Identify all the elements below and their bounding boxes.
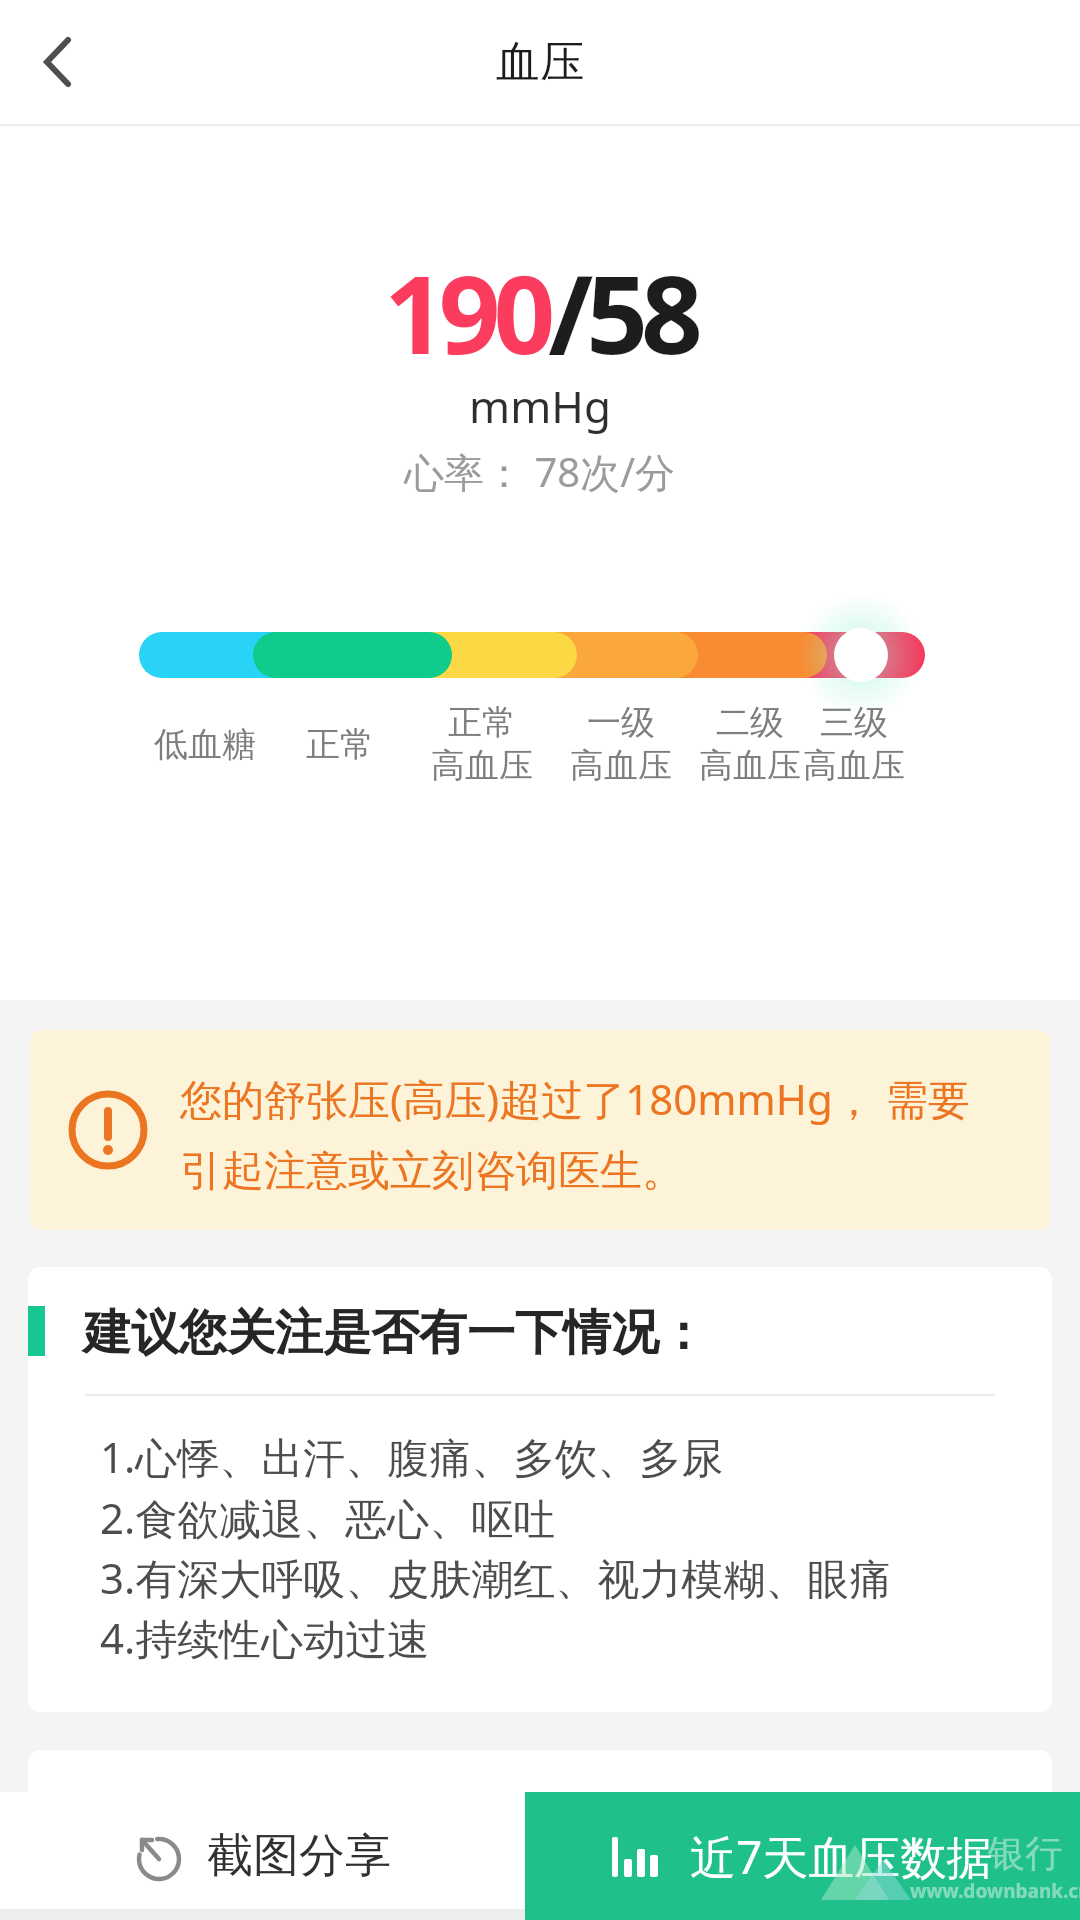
staticText: 银行 <box>988 1830 1062 1877</box>
staticText: 截图分享 <box>207 1827 391 1885</box>
staticText: 三级 高血压 <box>803 701 905 787</box>
staticText: www.downbank.cn <box>910 1878 1080 1904</box>
staticText: 血压 <box>496 35 584 90</box>
staticText: 近7天血压数据 <box>690 1825 993 1888</box>
staticText: 190/58 <box>384 239 696 386</box>
staticText: 1.心悸、出汗、腹痛、多饮、多尿 2.食欲减退、恶心、呕吐 3.有深大呼吸、皮肤… <box>100 1428 892 1666</box>
staticText: 二级 高血压 <box>699 701 801 787</box>
staticText: 心率： 78次/分 <box>404 444 676 499</box>
staticText: 正常 <box>306 723 374 766</box>
staticText: 低血糖 <box>154 723 256 766</box>
staticText: 一级 高血压 <box>570 701 672 787</box>
staticText: mmHg <box>469 376 611 436</box>
button[interactable] <box>0 0 120 124</box>
staticText: 正常 高血压 <box>431 701 533 787</box>
staticText: 建议您关注是否有一下情况： <box>83 1303 707 1363</box>
button[interactable]: 截图分享 <box>0 1792 525 1920</box>
button[interactable]: 近7天血压数据 <box>525 1792 1080 1920</box>
staticText: 您的舒张压(高压)超过了180mmHg， 需要 引起注意或立刻咨询医生。 <box>180 1070 970 1198</box>
